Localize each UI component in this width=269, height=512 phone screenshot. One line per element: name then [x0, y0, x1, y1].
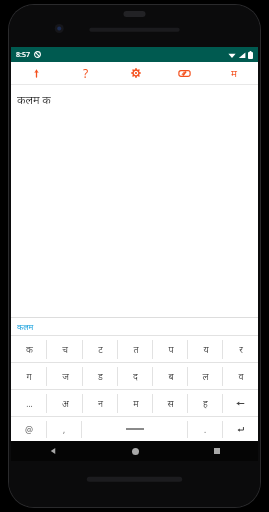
staticText: कलम [17, 321, 34, 332]
button[interactable]: र [223, 336, 258, 362]
staticText: , [63, 424, 66, 435]
button[interactable]: ल [188, 363, 223, 389]
button[interactable]: Home [94, 441, 176, 461]
staticText: स [167, 397, 174, 409]
staticText: ? [83, 65, 89, 81]
button[interactable]: Backspace [223, 390, 258, 416]
staticText: . [204, 424, 207, 435]
button[interactable]: , [47, 417, 82, 441]
staticText: ट [98, 343, 103, 355]
staticText: प [168, 343, 174, 355]
button[interactable]: . [188, 417, 223, 441]
button[interactable]: य [188, 336, 223, 362]
button[interactable]: प [153, 336, 188, 362]
staticText: @ [25, 423, 34, 435]
staticText: र [239, 343, 243, 355]
staticText: न [98, 397, 103, 409]
button[interactable]: म [118, 390, 153, 416]
button[interactable]: कलम क [11, 85, 258, 317]
button[interactable]: ज [47, 363, 83, 389]
staticText: त [133, 343, 139, 355]
staticText: अ [62, 397, 69, 409]
button[interactable]: ब [153, 363, 188, 389]
button[interactable]: Language [209, 62, 258, 84]
staticText: ... [26, 398, 33, 409]
staticText: ग [26, 370, 32, 382]
button[interactable]: क [11, 336, 47, 362]
staticText: म [133, 397, 139, 409]
button[interactable]: अ [47, 390, 83, 416]
button[interactable]: Navigate up [11, 62, 61, 84]
button[interactable]: च [47, 336, 83, 362]
button[interactable]: स [153, 390, 188, 416]
staticText: ह [203, 397, 208, 409]
staticText: म [231, 66, 237, 80]
staticText: क [26, 343, 33, 355]
button[interactable]: @ [11, 417, 47, 441]
staticText: 8:57 [16, 50, 30, 60]
button[interactable]: ड [83, 363, 118, 389]
other: Backspace [223, 390, 258, 416]
button[interactable]: ... [11, 390, 47, 416]
button[interactable]: Clear text [160, 62, 209, 84]
button[interactable]: द [118, 363, 153, 389]
staticText: च [62, 343, 68, 355]
button[interactable]: ट [83, 336, 118, 362]
button[interactable]: Back [11, 441, 94, 461]
button[interactable]: ह [188, 390, 223, 416]
staticText: ज [62, 370, 69, 382]
button[interactable]: व [223, 363, 258, 389]
button[interactable]: Settings [111, 62, 160, 84]
staticText: ब [168, 370, 174, 382]
button[interactable]: न [83, 390, 118, 416]
button[interactable]: त [118, 336, 153, 362]
staticText: कलम क [17, 92, 51, 107]
staticText: ल [202, 370, 209, 382]
button[interactable]: ग [11, 363, 47, 389]
staticText: व [238, 370, 244, 382]
staticText: ड [98, 370, 103, 382]
button[interactable]: कलम [11, 319, 40, 334]
staticText: द [133, 370, 138, 382]
staticText: य [203, 343, 209, 355]
button[interactable]: Recent apps [176, 441, 258, 461]
button[interactable]: Space [82, 417, 188, 441]
button[interactable]: Help [61, 62, 111, 84]
button[interactable]: Enter [223, 417, 258, 441]
